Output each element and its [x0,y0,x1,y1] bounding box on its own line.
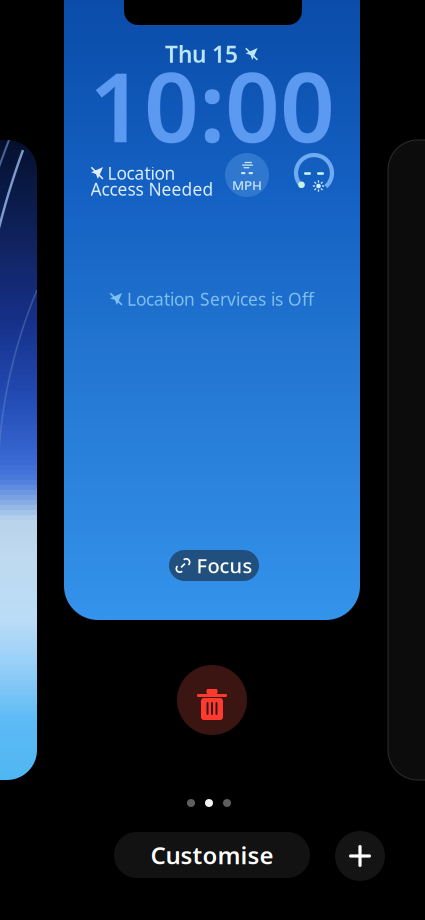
staticText: Thu 15 [165,39,238,69]
staticText: Focus [196,552,252,579]
staticText: Customise [150,839,273,871]
button[interactable]: Focus [169,550,259,581]
staticText: MPH [232,176,262,194]
button[interactable]: Add wallpaper [335,831,385,881]
staticText: Access Needed [90,177,213,200]
button[interactable]: Customise [114,832,310,878]
staticText: 10:00 [89,41,335,169]
staticText: Location [107,161,175,184]
staticText: Location Services is Off [127,287,314,310]
button[interactable]: Delete wallpaper [177,665,247,735]
